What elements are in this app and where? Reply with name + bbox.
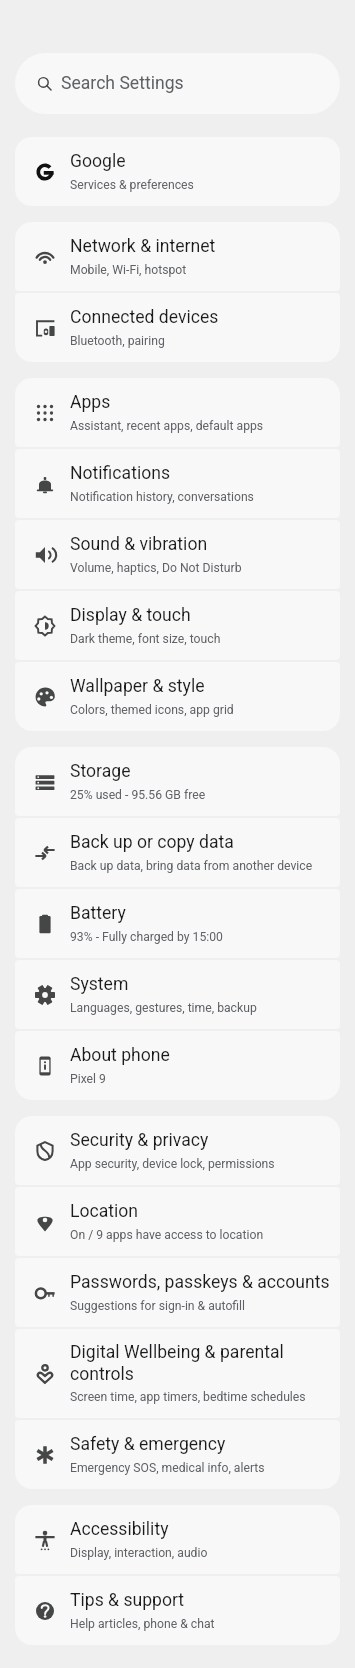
button[interactable]: Security & privacy (15, 1116, 340, 1185)
staticText: Assistant, recent apps, default apps (70, 419, 264, 433)
staticText: Dark theme, font size, touch (70, 632, 221, 646)
staticText: Colors, themed icons, app grid (70, 703, 234, 717)
button[interactable]: Notifications (15, 449, 340, 518)
button[interactable]: Display & touch (15, 591, 340, 660)
staticText: Connected devices (70, 307, 219, 328)
staticText: 25% used - 95.56 GB free (70, 788, 206, 802)
staticText: Tips & support (70, 1590, 185, 1611)
button[interactable]: Wallpaper & style (15, 662, 340, 731)
button[interactable]: Tips & support (15, 1576, 340, 1645)
staticText: Notification history, conversations (70, 490, 254, 504)
staticText: Back up data, bring data from another de… (70, 859, 313, 873)
staticText: Display, interaction, audio (70, 1546, 208, 1560)
button[interactable]: About phone (15, 1031, 340, 1100)
button[interactable]: Search Settings (15, 53, 340, 114)
staticText: Safety & emergency (70, 1434, 226, 1455)
staticText: Pixel 9 (70, 1072, 106, 1086)
staticText: Notifications (70, 463, 171, 484)
button[interactable]: System (15, 960, 340, 1029)
button[interactable]: Battery (15, 889, 340, 958)
staticText: Help articles, phone & chat (70, 1617, 215, 1631)
staticText: Mobile, Wi-Fi, hotspot (70, 263, 187, 277)
button[interactable]: Location (15, 1187, 340, 1256)
button[interactable]: Digital Wellbeing & parental controls (15, 1329, 340, 1418)
staticText: About phone (70, 1045, 170, 1066)
button[interactable]: Connected devices (15, 293, 340, 362)
button[interactable]: Passwords, passkeys & accounts (15, 1258, 340, 1327)
button[interactable]: Google (15, 137, 340, 206)
staticText: Emergency SOS, medical info, alerts (70, 1461, 265, 1475)
staticText: Network & internet (70, 236, 216, 257)
staticText: App security, device lock, permissions (70, 1157, 275, 1171)
button[interactable]: Apps (15, 378, 340, 447)
staticText: Security & privacy (70, 1130, 209, 1151)
staticText: Apps (70, 392, 111, 413)
staticText: Digital Wellbeing & parental controls (70, 1342, 334, 1384)
staticText: Accessibility (70, 1519, 169, 1540)
button[interactable]: Storage (15, 747, 340, 816)
button[interactable]: Accessibility (15, 1505, 340, 1574)
staticText: Search Settings (61, 73, 184, 94)
staticText: Battery (70, 903, 126, 924)
staticText: Bluetooth, pairing (70, 334, 165, 348)
button[interactable]: Safety & emergency (15, 1420, 340, 1489)
staticText: On / 9 apps have access to location (70, 1228, 264, 1242)
staticText: Storage (70, 761, 131, 782)
staticText: System (70, 974, 129, 995)
staticText: Sound & vibration (70, 534, 208, 555)
staticText: 93% - Fully charged by 15:00 (70, 930, 223, 944)
staticText: Services & preferences (70, 178, 194, 192)
staticText: Wallpaper & style (70, 676, 205, 697)
button[interactable]: Sound & vibration (15, 520, 340, 589)
staticText: Passwords, passkeys & accounts (70, 1272, 330, 1293)
staticText: Back up or copy data (70, 832, 234, 853)
staticText: Display & touch (70, 605, 191, 626)
button[interactable]: Network & internet (15, 222, 340, 291)
button[interactable]: Back up or copy data (15, 818, 340, 887)
staticText: Suggestions for sign-in & autofill (70, 1299, 246, 1313)
staticText: Screen time, app timers, bedtime schedul… (70, 1390, 306, 1404)
staticText: Google (70, 151, 126, 172)
staticText: Volume, haptics, Do Not Disturb (70, 561, 242, 575)
staticText: Languages, gestures, time, backup (70, 1001, 257, 1015)
staticText: Location (70, 1201, 139, 1222)
